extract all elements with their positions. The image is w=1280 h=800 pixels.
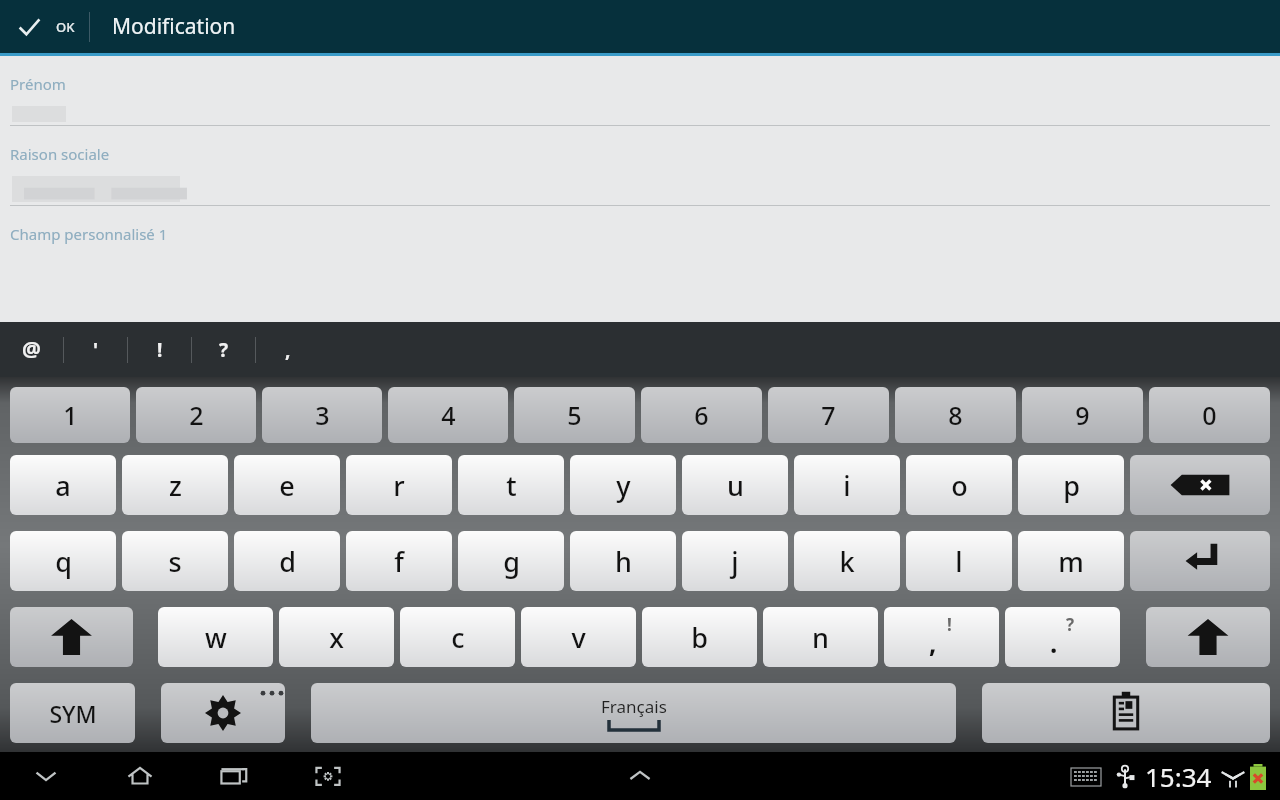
button[interactable]: Expand [613, 752, 667, 800]
staticText: SYM [49, 698, 97, 729]
staticText: w [205, 619, 227, 656]
staticText: l [955, 543, 963, 580]
staticText: Raison sociale [10, 144, 110, 164]
button[interactable]: Français [311, 683, 956, 743]
button[interactable]: 4 [388, 387, 508, 443]
staticText: a [55, 467, 71, 504]
button[interactable]: Recents [206, 752, 262, 800]
button[interactable]: a [10, 455, 116, 515]
staticText: t [506, 467, 517, 504]
button[interactable]: Raison sociale [0, 126, 1280, 206]
button[interactable]: v [521, 607, 636, 667]
button[interactable]: OK [0, 0, 89, 53]
button[interactable]: t [458, 455, 564, 515]
button[interactable]: 2 [136, 387, 256, 443]
staticText: ' [93, 337, 99, 363]
button[interactable]: Shift [10, 607, 133, 667]
staticText: e [279, 467, 295, 504]
staticText: s [168, 543, 182, 580]
staticText: v [571, 619, 586, 656]
staticText: 4 [441, 398, 456, 432]
staticText: Modification [112, 12, 236, 41]
button[interactable]: Home [112, 752, 168, 800]
button[interactable]: h [570, 531, 676, 591]
button[interactable]: b [642, 607, 757, 667]
button[interactable]: , [256, 322, 319, 377]
staticText: 7 [821, 398, 836, 432]
button[interactable]: e [234, 455, 340, 515]
button[interactable]: 7 [768, 387, 889, 443]
button[interactable]: w [158, 607, 273, 667]
staticText: q [55, 543, 72, 580]
staticText: 1 [63, 398, 78, 432]
button[interactable]: s [122, 531, 228, 591]
button[interactable]: Prénom [0, 56, 1280, 126]
button[interactable]: j [682, 531, 788, 591]
staticText: ? [219, 337, 229, 363]
button[interactable]: p [1018, 455, 1124, 515]
button[interactable]: ? [192, 322, 255, 377]
button[interactable]: SYM [10, 683, 135, 743]
button[interactable]: 6 [641, 387, 762, 443]
button[interactable]: ! [884, 607, 999, 667]
button[interactable]: g [458, 531, 564, 591]
button[interactable]: Hide keyboard [18, 752, 74, 800]
staticText: ? [1066, 613, 1075, 636]
button[interactable]: q [10, 531, 116, 591]
button[interactable]: Clipboard [982, 683, 1270, 743]
button[interactable]: 8 [895, 387, 1016, 443]
staticText: g [503, 543, 520, 580]
button[interactable]: o [906, 455, 1012, 515]
button[interactable]: 3 [262, 387, 382, 443]
button[interactable]: 9 [1022, 387, 1143, 443]
staticText: Français [601, 695, 667, 718]
button[interactable]: Backspace [1130, 455, 1270, 515]
button[interactable]: ? [1005, 607, 1120, 667]
staticText: 0 [1202, 398, 1217, 432]
staticText: 2 [189, 398, 204, 432]
staticText: x [329, 619, 344, 656]
staticText: OK [56, 18, 75, 36]
button[interactable]: Settings [161, 683, 285, 743]
button[interactable]: k [794, 531, 900, 591]
staticText: r [393, 467, 405, 504]
button[interactable]: m [1018, 531, 1124, 591]
button[interactable]: 0 [1149, 387, 1270, 443]
button[interactable]: c [400, 607, 515, 667]
staticText: Prénom [10, 74, 66, 94]
button[interactable]: y [570, 455, 676, 515]
staticText: j [731, 543, 739, 580]
staticText: 5 [567, 398, 582, 432]
button[interactable]: Shift [1146, 607, 1270, 667]
staticText: o [951, 467, 968, 504]
staticText: 9 [1075, 398, 1090, 432]
button[interactable]: f [346, 531, 452, 591]
button[interactable]: Screenshot [300, 752, 356, 800]
button[interactable]: 5 [514, 387, 635, 443]
staticText: Champ personnalisé 1 [10, 224, 168, 244]
staticText: 6 [694, 398, 709, 432]
staticText: u [727, 467, 744, 504]
button[interactable]: d [234, 531, 340, 591]
button[interactable]: i [794, 455, 900, 515]
button[interactable]: ' [64, 322, 127, 377]
button[interactable]: l [906, 531, 1012, 591]
button[interactable]: z [122, 455, 228, 515]
staticText: c [451, 619, 465, 656]
staticText: h [615, 543, 632, 580]
staticText: z [169, 467, 182, 504]
button[interactable]: @ [0, 322, 63, 377]
button[interactable]: 1 [10, 387, 130, 443]
staticText: . [1050, 625, 1058, 660]
button[interactable]: u [682, 455, 788, 515]
staticText: ! [157, 337, 163, 363]
button[interactable]: r [346, 455, 452, 515]
staticText: b [691, 619, 708, 656]
button[interactable]: Enter [1130, 531, 1270, 591]
button[interactable]: x [279, 607, 394, 667]
button[interactable]: n [763, 607, 878, 667]
staticText: y [616, 467, 631, 504]
staticText: i [843, 467, 851, 504]
staticText: 8 [948, 398, 963, 432]
button[interactable]: ! [128, 322, 191, 377]
